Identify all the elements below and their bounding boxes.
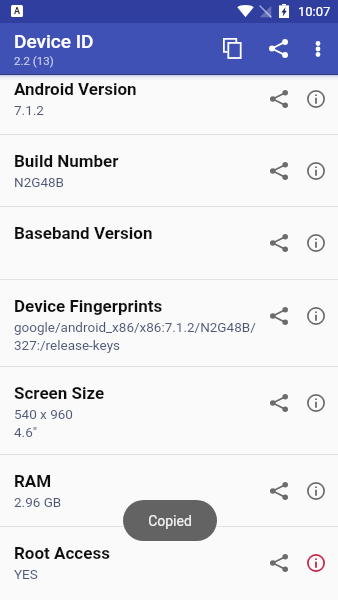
staticText: 540 x 960	[14, 405, 73, 423]
staticText: 10:07	[298, 4, 331, 19]
staticText: Copied	[148, 513, 192, 529]
staticText: Baseband Version	[14, 223, 153, 243]
button[interactable]: Share Root Access	[260, 547, 297, 579]
staticText: RAM	[14, 471, 52, 491]
staticText: Android Version	[14, 79, 137, 99]
button[interactable]: About Root Access	[297, 547, 335, 579]
staticText: 4.6"	[14, 423, 38, 441]
staticText: Device ID	[14, 31, 94, 53]
button[interactable]: Share Device Fingerprints	[260, 300, 297, 332]
staticText: Device Fingerprints	[14, 296, 163, 316]
button[interactable]: Device Fingerprints	[0, 280, 338, 366]
button[interactable]: Share RAM	[260, 475, 297, 507]
button[interactable]: Screen Size	[0, 367, 338, 454]
button[interactable]: Android Version	[0, 74, 338, 134]
button[interactable]: Baseband Version	[0, 207, 338, 279]
button[interactable]: RAM	[0, 455, 338, 526]
button[interactable]: Share Baseband Version	[260, 227, 297, 259]
button[interactable]: About Screen Size	[297, 387, 335, 419]
button[interactable]: About Baseband Version	[297, 227, 335, 259]
staticText: 2.2 (13)	[14, 55, 54, 68]
button[interactable]: Share Build Number	[260, 155, 297, 187]
button[interactable]: Share Screen Size	[260, 387, 297, 419]
button[interactable]: More options	[301, 26, 335, 71]
staticText: N2G48B	[14, 173, 64, 191]
staticText: A	[14, 6, 21, 17]
button[interactable]: About Build Number	[297, 155, 335, 187]
staticText: Build Number	[14, 151, 119, 171]
staticText: 327:/release-keys	[14, 336, 120, 354]
staticText: Screen Size	[14, 383, 105, 403]
button[interactable]: Copy all	[209, 26, 255, 71]
button[interactable]: Share Android Version	[260, 83, 297, 115]
button[interactable]: About RAM	[297, 475, 335, 507]
staticText: 7.1.2	[14, 101, 44, 119]
button[interactable]: Share	[255, 26, 301, 71]
button[interactable]: Root Access	[0, 527, 338, 600]
button[interactable]: About Device Fingerprints	[297, 300, 335, 332]
staticText: 2.96 GB	[14, 493, 62, 511]
button[interactable]: About Android Version	[297, 83, 335, 115]
staticText: YES	[14, 565, 38, 583]
button[interactable]: Build Number	[0, 135, 338, 206]
staticText: google/android_x86/x86:7.1.2/N2G48B/	[14, 318, 256, 336]
staticText: Root Access	[14, 543, 110, 563]
